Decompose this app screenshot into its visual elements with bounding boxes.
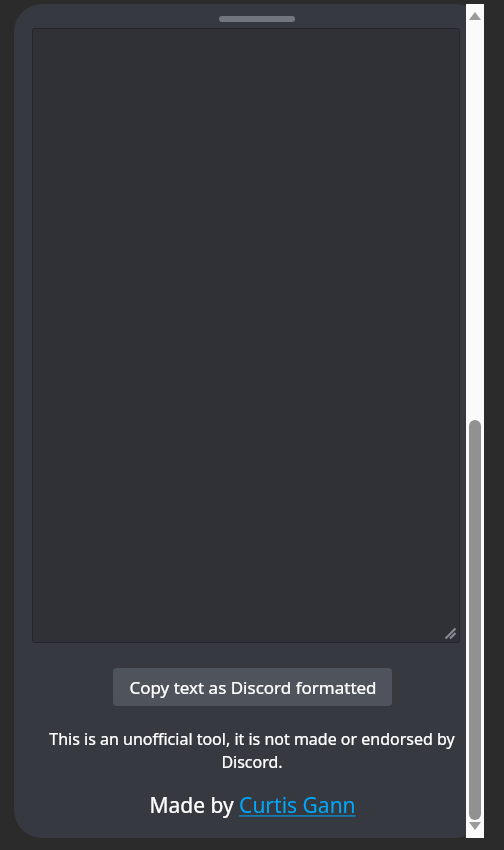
staticText: This is an unofficial tool, it is not ma…: [47, 728, 457, 773]
button[interactable]: Made by Curtis Gann: [149, 791, 356, 820]
button[interactable]: Copy text as Discord formatted: [113, 668, 392, 706]
staticText: Copy text as Discord formatted: [129, 676, 377, 699]
button[interactable]: [469, 420, 481, 820]
staticText: Made by Curtis Gann: [149, 791, 356, 820]
